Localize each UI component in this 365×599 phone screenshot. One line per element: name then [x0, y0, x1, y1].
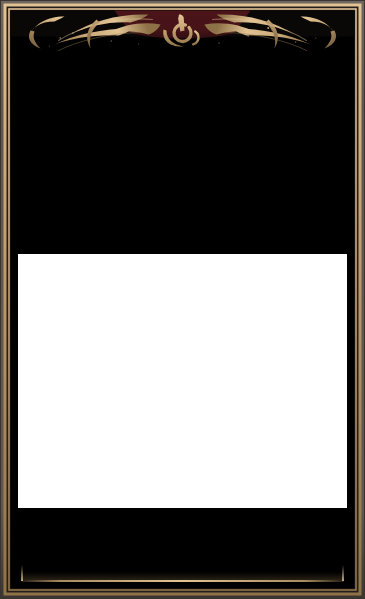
- button[interactable]: Emblem: [147, 10, 219, 46]
